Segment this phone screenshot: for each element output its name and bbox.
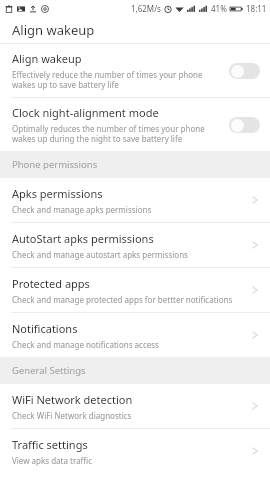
other: Open — [250, 399, 260, 413]
other: Open — [250, 444, 260, 458]
staticText: Effectively reduce the number of times y… — [12, 69, 203, 90]
staticText: Protected apps — [12, 276, 90, 291]
button[interactable]: WiFi Network detection — [0, 384, 270, 428]
staticText: Traffic settings — [12, 437, 88, 452]
staticText: 18:11 — [246, 3, 267, 14]
staticText: General Settings — [12, 364, 86, 377]
staticText: Check and manage protected apps for bett… — [12, 294, 233, 305]
staticText: 41% — [211, 3, 227, 14]
button[interactable]: Protected apps — [0, 268, 270, 312]
staticText: Align wakeup — [12, 21, 95, 39]
staticText: Notifications — [12, 321, 78, 336]
button[interactable]: Notifications — [0, 313, 270, 357]
other: Open — [250, 328, 260, 342]
staticText: Phone permissions — [12, 158, 98, 171]
staticText: WiFi Network detection — [12, 392, 133, 407]
button[interactable]: Traffic settings — [0, 429, 270, 473]
staticText: View apks data traffic — [12, 455, 92, 466]
staticText: Check and manage apks permissions — [12, 204, 152, 215]
staticText: Optimally reduces the number of times yo… — [12, 123, 205, 144]
button[interactable]: Toggle — [229, 63, 260, 79]
button[interactable]: Clock night-alignment mode — [0, 98, 270, 151]
button[interactable]: AutoStart apks permissions — [0, 223, 270, 267]
staticText: Apks permissions — [12, 186, 103, 201]
staticText: 1,62M/s — [131, 3, 161, 14]
button[interactable]: Align wakeup — [0, 44, 270, 97]
staticText: AutoStart apks permissions — [12, 231, 154, 246]
staticText: Check WiFi Network diagnostics — [12, 410, 132, 421]
other: Open — [250, 238, 260, 252]
staticText: Check and manage notifications access — [12, 339, 159, 350]
button[interactable]: Apks permissions — [0, 178, 270, 222]
staticText: Check and manage autostart apks permissi… — [12, 249, 188, 260]
other: Open — [250, 283, 260, 297]
staticText: Align wakeup — [12, 51, 82, 66]
button[interactable]: Toggle — [229, 117, 260, 133]
staticText: Clock night-alignment mode — [12, 105, 159, 120]
other: Open — [250, 193, 260, 207]
